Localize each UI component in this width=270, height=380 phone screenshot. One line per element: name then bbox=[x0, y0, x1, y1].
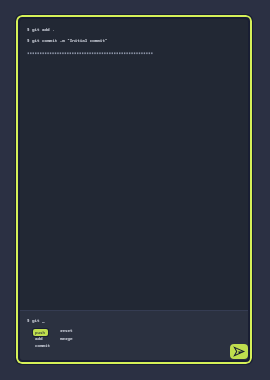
staticText: reset bbox=[60, 328, 73, 334]
staticText: $ git _ bbox=[27, 318, 45, 324]
staticText: add bbox=[35, 336, 43, 342]
button[interactable]: Send command bbox=[230, 344, 248, 359]
button[interactable]: add bbox=[33, 336, 45, 342]
staticText: $ git commit -m "Initial commit" bbox=[27, 38, 108, 44]
staticText: $ git add . bbox=[27, 27, 55, 33]
button[interactable]: merge bbox=[58, 336, 75, 342]
button[interactable]: push bbox=[32, 328, 49, 337]
button[interactable]: reset bbox=[58, 328, 75, 334]
staticText: push bbox=[35, 330, 46, 336]
staticText: commit bbox=[35, 343, 51, 349]
staticText: merge bbox=[60, 336, 73, 342]
button[interactable]: commit bbox=[33, 343, 53, 349]
